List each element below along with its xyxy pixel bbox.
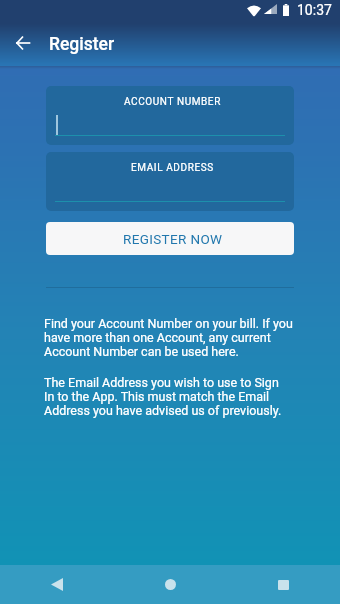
button[interactable]: REGISTER NOW <box>46 222 294 255</box>
staticText: The Email Address you wish to use to Sig… <box>44 375 298 418</box>
button[interactable]: ACCOUNT NUMBER <box>46 86 294 145</box>
button[interactable]: Recent apps <box>227 565 340 604</box>
staticText: 10:37 <box>297 2 332 18</box>
button[interactable]: Home <box>114 565 227 604</box>
staticText: EMAIL ADDRESS <box>131 162 214 174</box>
staticText: Find your Account Number on your bill. I… <box>44 316 298 359</box>
staticText: ACCOUNT NUMBER <box>124 96 221 108</box>
button[interactable]: EMAIL ADDRESS <box>46 152 294 211</box>
staticText: Register <box>49 34 115 55</box>
button[interactable]: Back <box>0 565 114 604</box>
staticText: REGISTER NOW <box>123 231 223 247</box>
button[interactable]: Navigate up <box>0 24 46 66</box>
